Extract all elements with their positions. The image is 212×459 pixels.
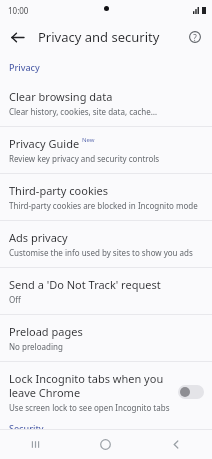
staticText: Clear history, cookies, site data, cache… <box>9 106 158 117</box>
staticText: Lock Incognito tabs when you leave Chrom… <box>9 371 172 400</box>
button[interactable]: Recents <box>0 429 70 459</box>
button[interactable]: Privacy Guide <box>0 127 212 173</box>
button[interactable]: Third-party cookies <box>0 174 212 220</box>
button[interactable]: Clear browsing data <box>0 80 212 126</box>
staticText: Ads privacy <box>9 230 68 245</box>
button[interactable]: Back <box>141 429 212 459</box>
staticText: Privacy Guide <box>9 136 80 151</box>
staticText: Privacy and security <box>38 28 178 46</box>
staticText: Customise the info used by sites to show… <box>9 247 193 258</box>
button[interactable]: Lock Incognito tabs toggle <box>178 385 204 399</box>
staticText: Review key privacy and security controls <box>9 153 160 164</box>
staticText: Third-party cookies are blocked in Incog… <box>9 200 198 211</box>
button[interactable]: Ads privacy <box>0 221 212 267</box>
staticText: No preloading <box>9 341 63 352</box>
button[interactable]: Send a 'Do Not Track' request <box>0 268 212 314</box>
button[interactable]: Home <box>70 429 141 459</box>
button[interactable]: Back <box>0 20 34 54</box>
button[interactable]: Preload pages <box>0 315 212 361</box>
staticText: 10:00 <box>8 5 29 16</box>
staticText: Third-party cookies <box>9 183 109 198</box>
button[interactable]: Lock Incognito tabs when you leave Chrom… <box>0 362 212 422</box>
staticText: ? <box>193 32 197 43</box>
staticText: Send a 'Do Not Track' request <box>9 277 161 292</box>
staticText: Clear browsing data <box>9 89 113 104</box>
staticText: Off <box>9 294 21 305</box>
staticText: New <box>82 136 95 144</box>
button[interactable]: Help <box>178 20 212 54</box>
staticText: Security <box>9 422 44 429</box>
staticText: Use screen lock to see open Incognito ta… <box>9 402 170 413</box>
staticText: Preload pages <box>9 324 83 339</box>
staticText: Privacy <box>9 61 40 73</box>
